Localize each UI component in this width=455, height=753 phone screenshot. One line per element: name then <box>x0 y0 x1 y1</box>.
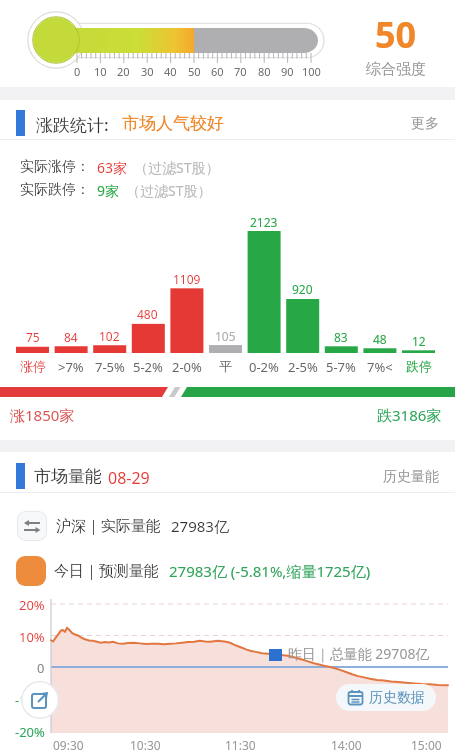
staticText: 105 <box>215 328 236 344</box>
staticText: 9家 <box>97 181 120 200</box>
staticText: 平 <box>219 358 232 374</box>
staticText: 60 <box>211 64 224 79</box>
staticText: 10% <box>19 628 45 646</box>
staticText: 涨1850家 <box>10 405 75 425</box>
staticText: >7% <box>58 358 84 376</box>
staticText: 11:30 <box>225 737 256 753</box>
staticText: 跌停 <box>406 358 432 374</box>
button[interactable]: 实际跌停： <box>20 181 212 200</box>
button[interactable]: 更多 <box>385 115 439 133</box>
staticText: 今日｜预测量能 <box>54 562 159 581</box>
staticText: -20% <box>15 723 45 741</box>
staticText: 50 <box>375 10 417 59</box>
staticText: 更多 <box>411 115 439 133</box>
staticText: 08-29 <box>108 467 150 489</box>
staticText: 20 <box>117 64 130 79</box>
button[interactable]: 历史数据 <box>336 684 436 711</box>
staticText: -10% <box>15 691 45 709</box>
staticText: 历史数据 <box>369 689 425 707</box>
staticText: 沪深｜实际量能 <box>56 517 161 536</box>
staticText: 70 <box>234 64 247 79</box>
staticText: 83 <box>334 329 348 345</box>
staticText: 实际跌停： <box>20 181 90 199</box>
staticText: 09:30 <box>53 737 84 753</box>
staticText: 1109 <box>173 271 201 287</box>
staticText: 90 <box>281 64 294 79</box>
staticText: 0 <box>37 659 45 677</box>
staticText: 历史量能 <box>383 468 439 486</box>
staticText: 2123 <box>250 214 278 230</box>
staticText: 昨日｜总量能 29708亿 <box>288 644 430 663</box>
button[interactable]: 沪深｜实际量能 <box>17 511 229 541</box>
staticText: 480 <box>137 306 158 322</box>
staticText: 102 <box>99 328 120 344</box>
staticText: 100 <box>302 64 321 79</box>
staticText: 75 <box>26 329 40 345</box>
staticText: 20% <box>19 596 45 614</box>
staticText: 27983亿 <box>171 516 229 536</box>
staticText: 涨停 <box>20 358 46 374</box>
staticText: （过滤ST股） <box>134 158 220 177</box>
staticText: 涨跌统计: <box>36 113 109 136</box>
staticText: 综合强度 <box>366 60 426 79</box>
staticText: 2-5% <box>288 358 318 376</box>
staticText: 27983亿 (-5.81%,缩量1725亿) <box>169 561 371 581</box>
staticText: 市场量能 <box>34 466 102 487</box>
staticText: 0-2% <box>249 358 279 376</box>
staticText: 5-7% <box>326 358 356 376</box>
staticText: 40 <box>164 64 177 79</box>
staticText: 63家 <box>97 158 128 177</box>
staticText: 80 <box>258 64 271 79</box>
button[interactable]: 实际涨停： <box>20 158 220 177</box>
staticText: 10 <box>94 64 107 79</box>
staticText: 920 <box>292 281 313 297</box>
staticText: 15:00 <box>411 737 442 753</box>
staticText: 12 <box>412 333 426 349</box>
staticText: 7-5% <box>95 358 125 376</box>
staticText: 84 <box>64 329 78 345</box>
staticText: 跌3186家 <box>377 405 442 425</box>
staticText: 50 <box>188 64 201 79</box>
staticText: 10:30 <box>130 737 161 753</box>
staticText: 30 <box>141 64 154 79</box>
staticText: 实际涨停： <box>20 158 90 176</box>
button[interactable] <box>21 681 59 719</box>
button[interactable]: 今日｜预测量能 <box>16 556 371 586</box>
staticText: 2-0% <box>172 358 202 376</box>
staticText: 市场人气较好 <box>122 113 224 134</box>
staticText: 7%< <box>367 358 393 376</box>
staticText: 14:00 <box>331 737 362 753</box>
staticText: 5-2% <box>133 358 163 376</box>
staticText: （过滤ST股） <box>126 181 212 200</box>
button[interactable]: 历史量能 <box>383 468 439 486</box>
staticText: 48 <box>373 331 387 347</box>
staticText: 0 <box>74 64 81 79</box>
